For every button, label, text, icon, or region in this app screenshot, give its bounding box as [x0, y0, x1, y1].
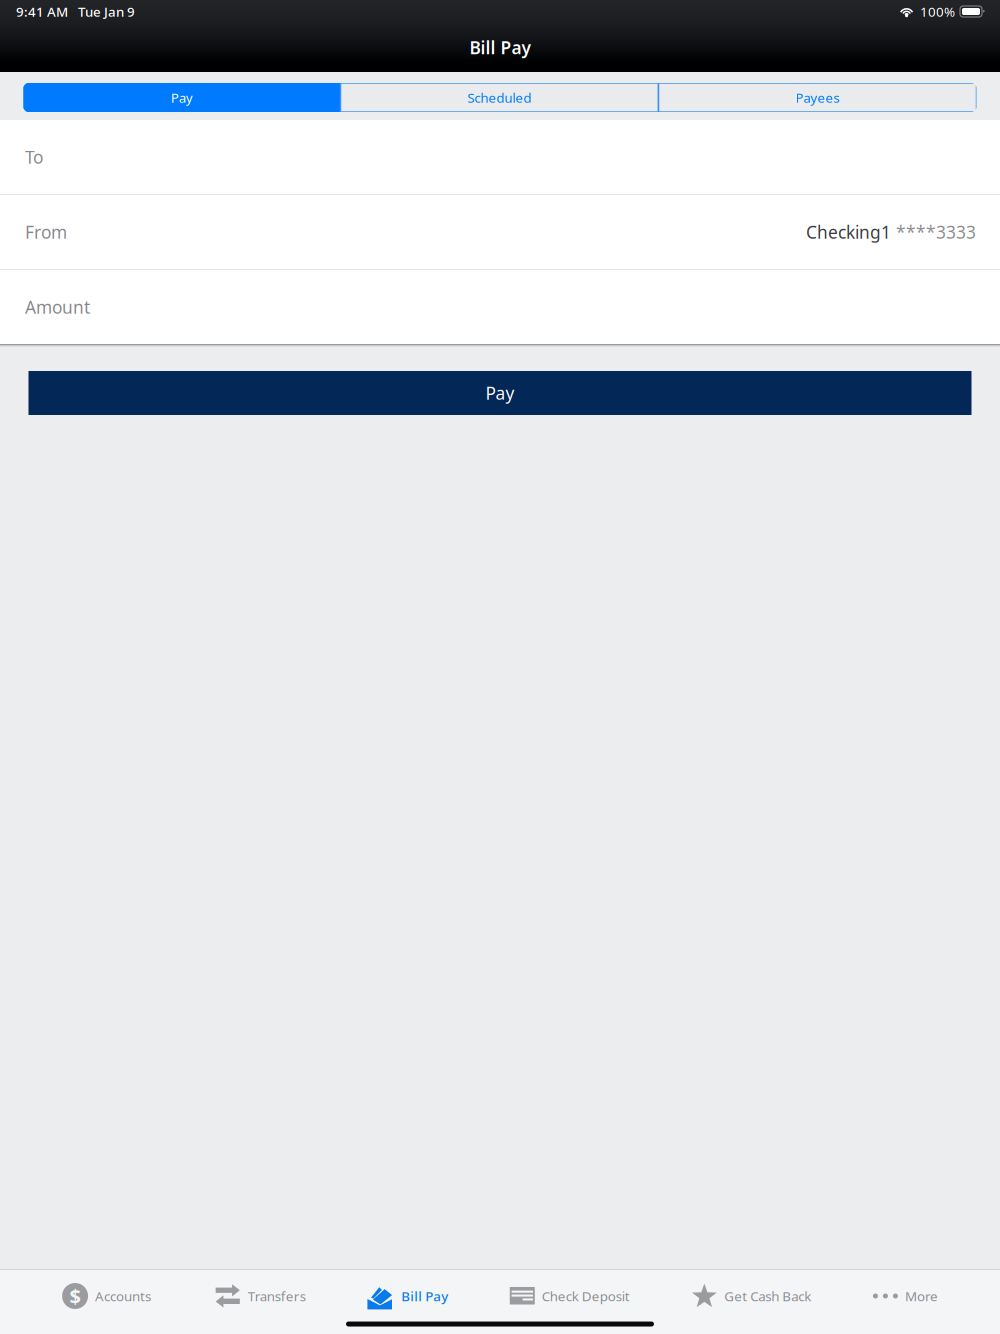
staticText: Pay	[171, 89, 193, 106]
staticText: Check Deposit	[542, 1287, 630, 1305]
staticText: 9:41 AM	[16, 3, 68, 20]
staticText: Scheduled	[467, 89, 531, 106]
staticText: Accounts	[95, 1287, 151, 1305]
staticText: Get Cash Back	[724, 1287, 811, 1305]
button[interactable]: Payees	[658, 83, 976, 112]
button[interactable]: Check Deposit	[510, 1270, 630, 1319]
staticText: Amount	[25, 295, 90, 318]
button[interactable]: $	[62, 1270, 151, 1319]
button[interactable]: Amount	[0, 270, 1000, 344]
button[interactable]: Bill Pay	[367, 1270, 448, 1319]
staticText: Checking1	[806, 220, 891, 243]
staticText: Payees	[795, 89, 839, 106]
button[interactable]: Pay	[23, 83, 340, 112]
staticText: Bill Pay	[469, 36, 530, 59]
staticText: Transfers	[248, 1287, 306, 1305]
button[interactable]: Scheduled	[340, 83, 658, 112]
button[interactable]: From	[0, 195, 1000, 269]
button[interactable]: More	[873, 1270, 938, 1319]
button[interactable]: Pay	[28, 371, 971, 415]
staticText: 100%	[920, 3, 955, 20]
staticText: $	[70, 1283, 81, 1309]
staticText: Tue Jan 9	[78, 3, 135, 20]
staticText: Bill Pay	[401, 1287, 448, 1305]
staticText: ****3333	[896, 220, 976, 243]
button[interactable]: Transfers	[213, 1270, 306, 1319]
button[interactable]: To	[0, 120, 1000, 194]
staticText: To	[25, 145, 43, 168]
staticText: More	[905, 1287, 938, 1305]
button[interactable]: Get Cash Back	[691, 1270, 811, 1319]
staticText: From	[25, 220, 67, 243]
staticText: Pay	[485, 381, 514, 404]
